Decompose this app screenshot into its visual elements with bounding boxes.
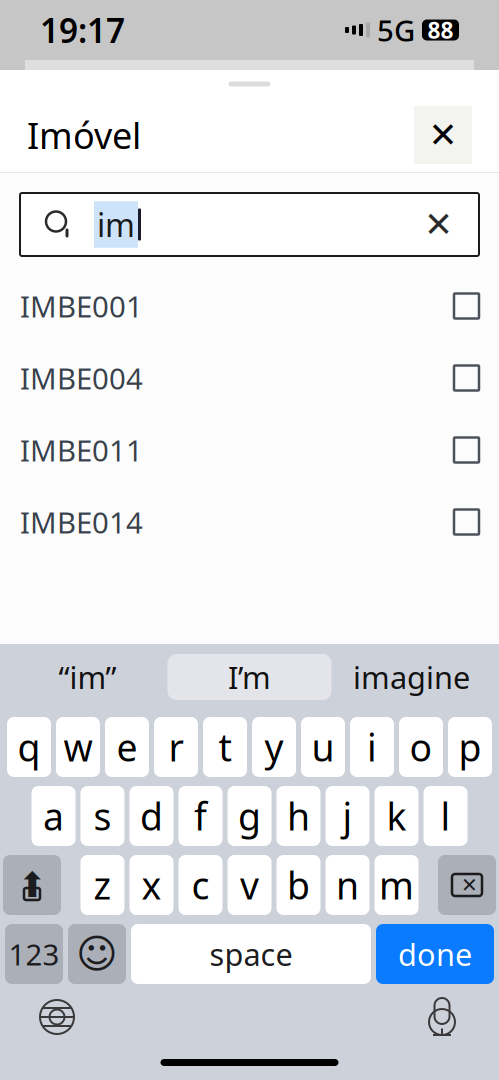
button[interactable]: k — [374, 786, 418, 846]
staticText: g — [238, 791, 261, 841]
button[interactable]: w — [56, 717, 100, 777]
staticText: b — [287, 860, 310, 910]
staticText: w — [63, 722, 92, 772]
button[interactable]: I’m — [167, 654, 331, 700]
button[interactable]: Ditado — [417, 992, 467, 1042]
staticText: ☺ — [76, 931, 118, 977]
button[interactable]: a — [31, 786, 75, 846]
button[interactable]: Apagar — [438, 855, 496, 915]
staticText: f — [194, 791, 207, 841]
staticText: t — [218, 722, 231, 772]
button[interactable]: 123 — [5, 924, 63, 984]
staticText: I’m — [228, 657, 271, 697]
staticText: y — [264, 722, 283, 772]
staticText: a — [43, 791, 64, 841]
button[interactable]: IMBE014 — [0, 486, 499, 558]
button[interactable]: IMBE011 — [0, 414, 499, 486]
button[interactable]: u — [301, 717, 345, 777]
button[interactable]: x — [129, 855, 173, 915]
button[interactable]: i — [350, 717, 394, 777]
button[interactable]: r — [154, 717, 198, 777]
button[interactable]: f — [178, 786, 222, 846]
staticText: i — [367, 722, 377, 772]
staticText: ✕ — [424, 205, 453, 244]
staticText: u — [311, 722, 334, 772]
staticText: z — [93, 860, 111, 910]
button[interactable]: Fechar — [414, 106, 472, 164]
staticText: ✕ — [461, 874, 478, 896]
staticText: im — [97, 203, 135, 246]
staticText: q — [17, 722, 40, 772]
button[interactable]: t — [203, 717, 247, 777]
button[interactable]: Campo de busca — [0, 173, 499, 270]
staticText: k — [386, 791, 406, 841]
button[interactable]: d — [129, 786, 173, 846]
staticText: Imóvel — [27, 111, 141, 159]
button[interactable]: p — [448, 717, 492, 777]
button[interactable]: IMBE004 — [0, 342, 499, 414]
staticText: space — [209, 934, 292, 974]
button[interactable]: “im” — [7, 654, 167, 700]
button[interactable]: imagine — [331, 654, 491, 700]
staticText: 88 — [427, 15, 453, 45]
button[interactable]: l — [423, 786, 467, 846]
staticText: IMBE014 — [20, 502, 143, 541]
staticText: done — [398, 934, 472, 974]
staticText: 19:17 — [40, 8, 125, 52]
button[interactable]: IMBE001 — [0, 270, 499, 342]
button[interactable]: Alterar idioma — [32, 992, 82, 1042]
staticText: o — [409, 722, 432, 772]
staticText: h — [287, 791, 310, 841]
button[interactable]: e — [105, 717, 149, 777]
button[interactable]: Emoji — [68, 924, 126, 984]
staticText: 123 — [8, 934, 59, 973]
staticText: l — [440, 791, 450, 841]
staticText: j — [342, 791, 352, 841]
button[interactable]: space — [131, 924, 371, 984]
button[interactable]: Shift — [3, 855, 61, 915]
staticText: r — [168, 722, 183, 772]
button[interactable]: j — [325, 786, 369, 846]
button[interactable]: y — [252, 717, 296, 777]
staticText: IMBE001 — [20, 286, 143, 325]
button[interactable]: h — [276, 786, 320, 846]
button[interactable]: done — [376, 924, 494, 984]
staticText: imagine — [353, 657, 470, 697]
button[interactable]: q — [7, 717, 51, 777]
staticText: IMBE011 — [20, 430, 143, 469]
staticText: s — [93, 791, 111, 841]
staticText: IMBE004 — [20, 358, 143, 397]
staticText: d — [140, 791, 163, 841]
button[interactable]: z — [80, 855, 124, 915]
staticText: ⬆ — [17, 865, 46, 905]
staticText: e — [116, 722, 137, 772]
button[interactable]: c — [178, 855, 222, 915]
staticText: m — [379, 860, 414, 910]
staticText: v — [240, 860, 259, 910]
button[interactable]: o — [399, 717, 443, 777]
button[interactable]: b — [276, 855, 320, 915]
button[interactable]: m — [374, 855, 418, 915]
button[interactable]: s — [80, 786, 124, 846]
staticText: n — [336, 860, 359, 910]
staticText: c — [191, 860, 209, 910]
staticText: p — [458, 722, 481, 772]
button[interactable]: v — [227, 855, 271, 915]
staticText: ✕ — [428, 115, 457, 155]
button[interactable]: n — [325, 855, 369, 915]
staticText: 5G — [377, 10, 415, 49]
staticText: x — [141, 860, 161, 910]
staticText: “im” — [58, 657, 116, 697]
button[interactable]: g — [227, 786, 271, 846]
